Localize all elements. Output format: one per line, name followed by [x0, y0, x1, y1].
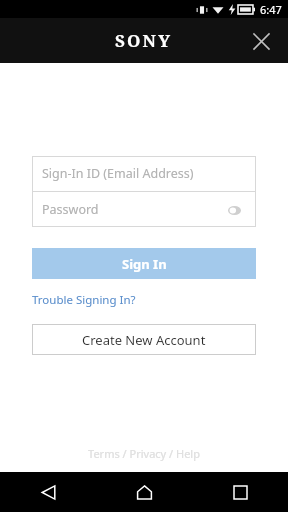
staticText: Sign-In ID (Email Address) — [42, 165, 194, 182]
button[interactable]: Password — [32, 192, 256, 227]
button[interactable]: Terms / Privacy / Help — [82, 444, 206, 463]
staticText: Terms / Privacy / Help — [88, 446, 200, 461]
button[interactable]: Back — [25, 472, 71, 512]
staticText: 6:47 — [260, 2, 282, 17]
button[interactable]: Create New Account — [32, 324, 256, 355]
button[interactable]: Show password — [222, 198, 246, 222]
staticText: Password — [42, 201, 99, 218]
staticText: Sign In — [122, 255, 167, 273]
staticText: Trouble Signing In? — [32, 292, 136, 308]
button[interactable]: Home — [121, 472, 167, 512]
button[interactable]: Sign-In ID (Email Address) — [32, 156, 256, 191]
staticText: Create New Account — [82, 331, 206, 349]
button[interactable]: Sign In — [32, 248, 256, 279]
staticText: SONY — [115, 29, 173, 52]
button[interactable]: Close — [244, 24, 278, 58]
button[interactable]: Recent apps — [217, 472, 263, 512]
button[interactable]: Trouble Signing In? — [32, 292, 136, 308]
